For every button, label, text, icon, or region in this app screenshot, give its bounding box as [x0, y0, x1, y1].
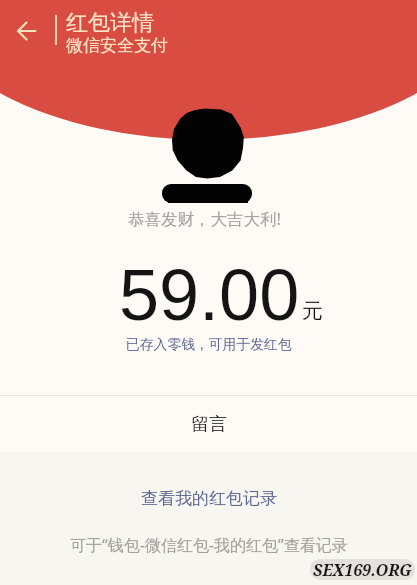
staticText: 留言 [191, 413, 227, 436]
button[interactable]: 留言 [0, 396, 417, 452]
staticText: 微信安全支付 [66, 35, 168, 56]
staticText: 查看我的红包记录 [141, 488, 277, 509]
staticText: 已存入零钱，可用于发红包 [126, 336, 292, 353]
button[interactable]: Back [4, 9, 48, 53]
staticText: 可于“钱包-微信红包-我的红包”查看记录 [70, 534, 348, 556]
staticText: 恭喜发财，大吉大利! [128, 207, 281, 230]
staticText: 元 [302, 298, 323, 324]
staticText: 59.00 [119, 255, 300, 335]
button[interactable]: 查看我的红包记录 [141, 488, 277, 509]
staticText: 红包详情 [66, 9, 154, 37]
staticText: SEX169.ORG [313, 559, 412, 580]
